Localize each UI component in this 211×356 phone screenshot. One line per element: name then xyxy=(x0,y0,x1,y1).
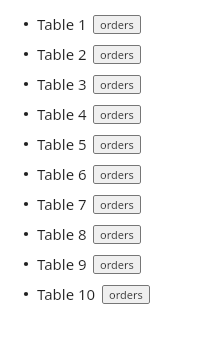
staticText: orders xyxy=(100,227,134,242)
staticText: Table 4 xyxy=(37,104,87,124)
staticText: Table 9 xyxy=(37,254,87,274)
button[interactable]: orders xyxy=(102,285,150,304)
staticText: Table 5 xyxy=(37,134,87,154)
button[interactable]: orders xyxy=(93,225,141,244)
button[interactable]: orders xyxy=(93,195,141,214)
button[interactable]: orders xyxy=(93,255,141,274)
staticText: orders xyxy=(100,167,134,182)
staticText: orders xyxy=(100,77,134,92)
button[interactable]: orders xyxy=(93,105,141,124)
staticText: Table 10 xyxy=(37,284,96,304)
button[interactable]: orders xyxy=(93,135,141,154)
staticText: Table 3 xyxy=(37,74,87,94)
staticText: orders xyxy=(100,17,134,32)
staticText: Table 8 xyxy=(37,224,87,244)
staticText: orders xyxy=(100,107,134,122)
staticText: Table 2 xyxy=(37,44,87,64)
staticText: orders xyxy=(109,287,143,302)
button[interactable]: orders xyxy=(93,75,141,94)
button[interactable]: orders xyxy=(93,15,141,34)
staticText: orders xyxy=(100,137,134,152)
staticText: orders xyxy=(100,197,134,212)
staticText: Table 7 xyxy=(37,194,87,214)
staticText: orders xyxy=(100,257,134,272)
staticText: orders xyxy=(100,47,134,62)
button[interactable]: orders xyxy=(93,45,141,64)
button[interactable]: orders xyxy=(93,165,141,184)
staticText: Table 6 xyxy=(37,164,87,184)
staticText: Table 1 xyxy=(37,14,87,34)
